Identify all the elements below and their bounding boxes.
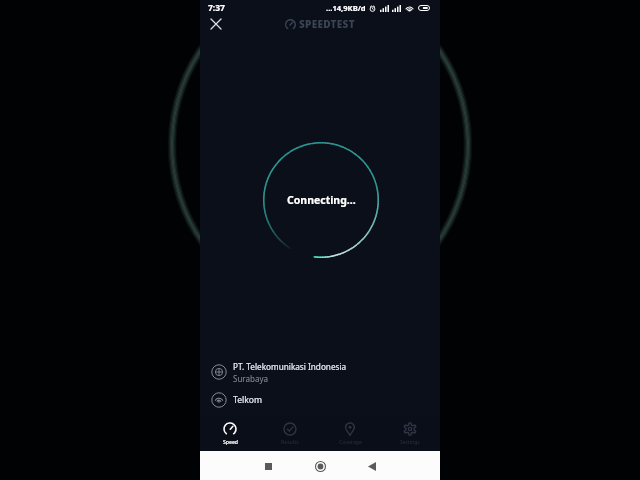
button[interactable]: Back (361, 455, 383, 477)
button[interactable]: Coverage (320, 416, 380, 451)
staticText: Connecting... (287, 193, 356, 207)
button[interactable]: Results (260, 416, 320, 451)
staticText: 7:37 (208, 2, 225, 14)
button[interactable]: Telkom (200, 387, 440, 413)
button[interactable]: Close (205, 13, 226, 34)
button[interactable]: Home (309, 455, 331, 477)
staticText: Coverage (339, 439, 362, 446)
staticText: Speed (223, 439, 238, 446)
staticText: PT. Telekomunikasi Indonesia (233, 361, 347, 372)
staticText: SPEEDTEST (299, 17, 355, 31)
staticText: Telkom (233, 394, 263, 406)
staticText: Settings (400, 439, 420, 446)
button[interactable]: Recents (257, 455, 279, 477)
button[interactable]: Settings (380, 416, 440, 451)
button[interactable]: Speed (200, 416, 260, 451)
button[interactable]: PT. Telekomunikasi Indonesia (200, 357, 440, 387)
staticText: Results (281, 439, 299, 446)
staticText: Surabaya (233, 373, 268, 384)
staticText: ...14,9KB/d (326, 3, 366, 13)
